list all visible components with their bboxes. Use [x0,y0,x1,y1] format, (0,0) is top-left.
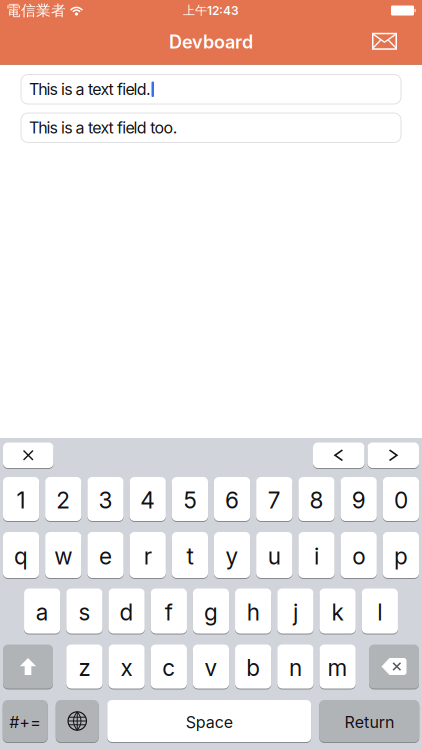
staticText: z [78,654,90,681]
staticText: s [78,599,90,625]
staticText: v [204,654,217,681]
staticText: 上午12:43 [183,3,239,18]
staticText: p [394,543,408,569]
staticText: a [36,599,49,625]
button[interactable]: l [362,588,398,633]
button[interactable] [3,644,53,688]
staticText: 6 [225,487,239,513]
button[interactable]: 4 [129,477,166,521]
button[interactable] [372,33,422,50]
button[interactable]: t [172,532,208,578]
staticText: 0 [394,487,408,513]
staticText: c [162,654,175,681]
staticText: r [144,543,152,569]
button[interactable]: x [108,644,145,688]
staticText: 7 [268,487,281,513]
button[interactable]: k [319,588,356,633]
staticText: Devboard [169,31,253,53]
button[interactable]: o [340,532,377,578]
staticText: l [377,599,382,625]
button[interactable]: q [3,532,39,578]
staticText: d [120,599,134,625]
button[interactable]: 5 [172,477,208,521]
staticText: k [332,599,344,625]
staticText: 1 [17,487,26,513]
staticText: 4 [140,487,155,513]
staticText: m [328,654,348,681]
button[interactable]: a [24,588,60,633]
button[interactable]: c [151,644,187,688]
button[interactable] [56,700,99,742]
button[interactable]: 7 [256,477,292,521]
button[interactable]: y [214,532,250,578]
button[interactable]: g [193,588,229,633]
staticText: b [246,654,260,681]
staticText: i [314,543,319,569]
staticText: 8 [309,487,323,513]
button[interactable]: 8 [298,477,335,521]
staticText: t [186,543,193,569]
button[interactable]: h [235,588,271,633]
button[interactable]: This is a text field too. [21,113,401,142]
button[interactable]: r [129,532,166,578]
staticText: y [226,543,239,569]
button[interactable] [369,644,419,688]
button[interactable]: 0 [383,477,419,521]
button[interactable]: b [235,644,271,688]
button[interactable]: u [256,532,292,578]
staticText: Return [344,713,394,732]
button[interactable]: n [277,644,313,688]
staticText: #+= [9,713,41,732]
button[interactable]: #+= [3,700,48,742]
staticText: n [289,654,302,681]
button[interactable]: f [151,588,187,633]
button[interactable]: s [66,588,102,633]
button[interactable]: p [383,532,419,578]
staticText: o [352,543,365,569]
button[interactable] [313,442,364,468]
button[interactable]: w [45,532,81,578]
button[interactable] [3,442,53,468]
button[interactable]: i [298,532,335,578]
button[interactable]: This is a text field. [21,74,401,104]
staticText: j [293,599,298,625]
staticText: Space [186,713,233,732]
staticText: w [54,543,72,569]
staticText: g [204,599,218,625]
button[interactable]: 6 [214,477,250,521]
button[interactable]: Space [107,700,311,742]
button[interactable]: j [277,588,313,633]
button[interactable] [367,442,419,468]
staticText: f [165,599,173,625]
staticText: u [268,543,281,569]
button[interactable]: v [193,644,229,688]
button[interactable]: z [66,644,102,688]
staticText: 5 [183,487,196,513]
staticText: 電信業者 [6,1,66,19]
button[interactable]: 1 [3,477,39,521]
staticText: e [99,543,112,569]
staticText: 3 [98,487,112,513]
staticText: This is a text field too. [29,118,178,137]
button[interactable]: e [87,532,124,578]
button[interactable]: d [108,588,145,633]
staticText: 2 [56,487,70,513]
button[interactable]: Return [319,700,419,742]
staticText: x [121,654,133,681]
button[interactable]: 9 [340,477,377,521]
button[interactable]: 3 [87,477,124,521]
button[interactable]: 2 [45,477,81,521]
staticText: This is a text field. [29,80,151,99]
button[interactable]: m [319,644,356,688]
staticText: h [247,599,260,625]
staticText: 9 [352,487,366,513]
staticText: q [14,543,28,569]
